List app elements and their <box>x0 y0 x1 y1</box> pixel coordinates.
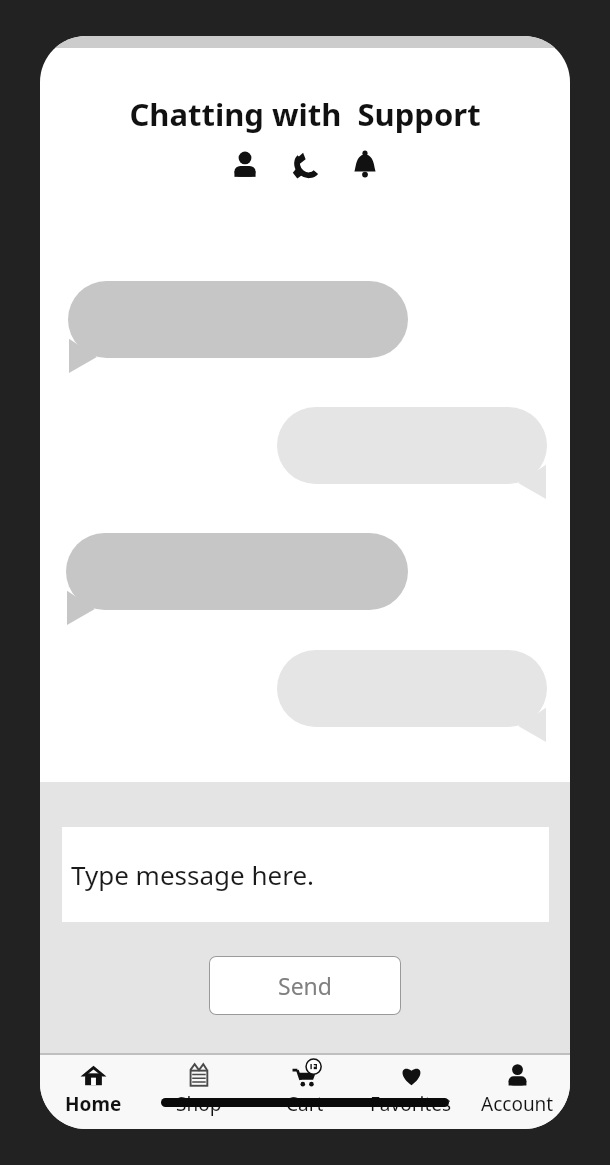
button[interactable] <box>277 650 547 742</box>
button[interactable]: Shop <box>146 1062 252 1129</box>
button[interactable]: Cart <box>252 1062 358 1129</box>
button[interactable]: Call <box>285 145 325 185</box>
button[interactable] <box>66 533 408 625</box>
staticText: Favorites <box>370 1091 452 1117</box>
staticText: Send <box>278 970 332 1001</box>
button[interactable] <box>68 281 408 373</box>
button[interactable]: Profile <box>225 145 265 185</box>
staticText: Home <box>65 1091 122 1117</box>
button[interactable]: Favorites <box>358 1062 464 1129</box>
button[interactable]: Notifications <box>345 145 385 185</box>
staticText: Type message here. <box>71 857 315 892</box>
staticText: Account <box>481 1091 554 1117</box>
staticText: Shop <box>176 1091 222 1117</box>
staticText: Cart <box>286 1091 324 1117</box>
button[interactable]: Send <box>209 956 401 1015</box>
button[interactable]: Account <box>464 1062 570 1129</box>
button[interactable]: Home <box>40 1062 146 1129</box>
button[interactable] <box>277 407 547 499</box>
staticText: Chatting with Support <box>129 93 481 135</box>
button[interactable]: Type message here. <box>62 827 549 922</box>
